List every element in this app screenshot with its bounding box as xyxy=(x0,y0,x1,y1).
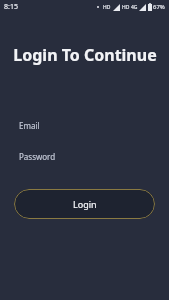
staticText: HD xyxy=(103,4,111,11)
staticText: Email xyxy=(19,120,40,131)
staticText: HD xyxy=(122,4,130,11)
button[interactable]: Login xyxy=(14,189,155,219)
button[interactable]: Password xyxy=(0,145,169,167)
staticText: 67% xyxy=(153,3,165,11)
other: Signal strength xyxy=(139,4,146,11)
staticText: Login xyxy=(73,198,97,210)
other: Battery 67 percent xyxy=(148,3,152,11)
other: Signal strength xyxy=(113,4,120,11)
button[interactable]: Email xyxy=(0,114,169,136)
staticText: Password xyxy=(19,151,56,162)
staticText: 4G xyxy=(131,4,138,11)
staticText: Login To Continue xyxy=(13,44,157,66)
staticText: 8:15 xyxy=(4,2,18,12)
